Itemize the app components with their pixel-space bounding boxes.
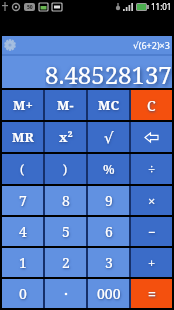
- staticText: MC: [98, 96, 120, 114]
- button[interactable]: 0: [2, 279, 43, 308]
- staticText: 8.48528137: [45, 58, 172, 88]
- button[interactable]: 4: [2, 217, 43, 246]
- button[interactable]: M+: [2, 90, 43, 120]
- staticText: √: [104, 129, 114, 146]
- button[interactable]: 000: [88, 279, 129, 308]
- button[interactable]: [45, 279, 86, 308]
- button[interactable]: 1: [2, 248, 43, 277]
- staticText: (: [20, 161, 25, 177]
- button[interactable]: 6: [88, 217, 129, 246]
- staticText: 0: [19, 284, 27, 303]
- staticText: ×: [148, 192, 156, 210]
- staticText: 2: [62, 253, 70, 272]
- staticText: +: [148, 254, 156, 272]
- staticText: M-: [57, 96, 74, 114]
- staticText: 3: [105, 253, 113, 272]
- button[interactable]: √: [88, 122, 129, 152]
- button[interactable]: x²: [45, 122, 86, 152]
- button[interactable]: MR: [2, 122, 43, 152]
- button[interactable]: 5: [45, 217, 86, 246]
- button[interactable]: %: [88, 154, 129, 184]
- button[interactable]: 3: [88, 248, 129, 277]
- staticText: 000: [97, 284, 121, 303]
- button[interactable]: ×: [131, 186, 172, 215]
- button[interactable]: −: [131, 217, 172, 246]
- button[interactable]: 9: [88, 186, 129, 215]
- staticText: ): [63, 161, 68, 177]
- button[interactable]: [131, 122, 172, 152]
- button[interactable]: ): [45, 154, 86, 184]
- button[interactable]: 7: [2, 186, 43, 215]
- staticText: 8: [62, 191, 70, 210]
- button[interactable]: 8: [45, 186, 86, 215]
- button[interactable]: M-: [45, 90, 86, 120]
- button[interactable]: +: [131, 248, 172, 277]
- staticText: 7: [19, 191, 27, 210]
- staticText: M+: [13, 96, 33, 114]
- button[interactable]: √(6+2)×3: [2, 36, 172, 54]
- button[interactable]: 8.48528137: [2, 56, 172, 88]
- staticText: −: [148, 223, 156, 241]
- staticText: %: [103, 160, 115, 178]
- button[interactable]: C: [131, 90, 172, 120]
- staticText: ÷: [148, 160, 156, 178]
- button[interactable]: ÷: [131, 154, 172, 184]
- staticText: =: [148, 284, 156, 303]
- staticText: x²: [59, 128, 73, 146]
- staticText: 5: [62, 222, 70, 241]
- button[interactable]: 2: [45, 248, 86, 277]
- staticText: 1: [19, 253, 27, 272]
- staticText: √(6+2)×3: [133, 39, 170, 51]
- button[interactable]: (: [2, 154, 43, 184]
- button[interactable]: MC: [88, 90, 129, 120]
- staticText: 11:01: [151, 1, 172, 12]
- staticText: 4: [19, 222, 27, 241]
- staticText: C: [147, 96, 156, 115]
- staticText: 50: [27, 4, 33, 11]
- button[interactable]: =: [131, 279, 172, 308]
- staticText: MR: [12, 128, 34, 146]
- staticText: 9: [105, 191, 113, 210]
- staticText: 6: [105, 222, 113, 241]
